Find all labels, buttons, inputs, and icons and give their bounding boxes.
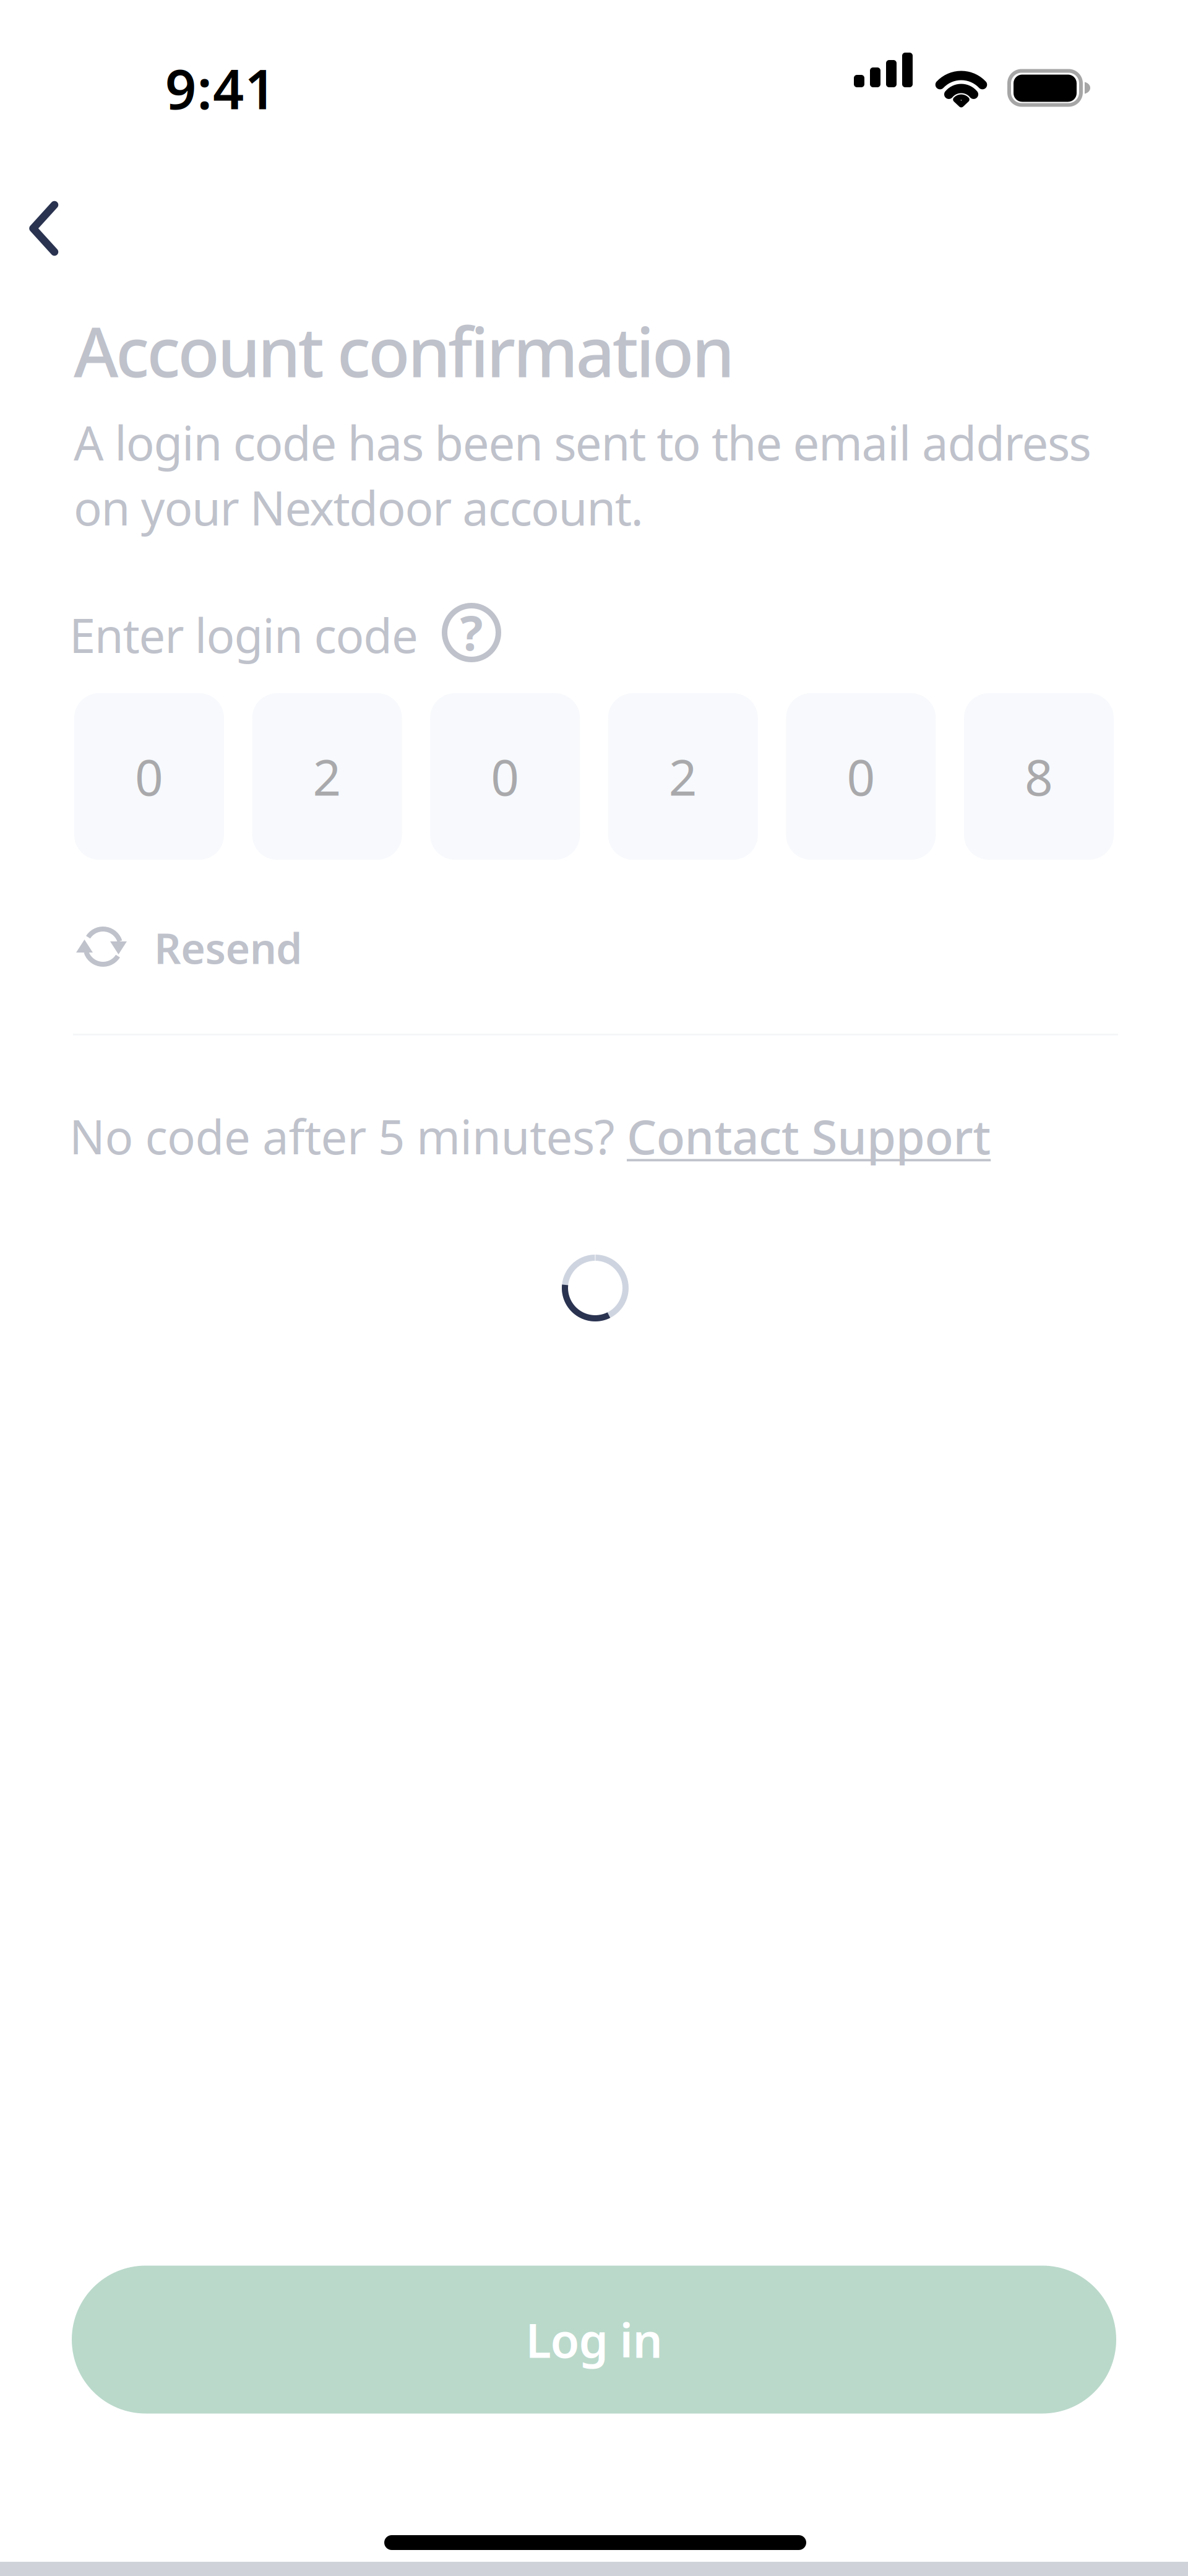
button[interactable]: Login code help [431, 592, 512, 673]
staticText: 9:41 [165, 52, 276, 102]
staticText: Log in [526, 2308, 662, 2371]
staticText: No code after 5 minutes? [69, 1105, 627, 1167]
staticText: 8 [1025, 744, 1053, 809]
button[interactable]: Resend [74, 915, 340, 980]
button[interactable]: Back [4, 172, 99, 284]
staticText: Resend [154, 920, 303, 976]
staticText: 0 [135, 744, 163, 809]
staticText: Contact Support [627, 1105, 991, 1167]
button[interactable]: 8 [964, 693, 1114, 860]
staticText: 2 [313, 744, 341, 809]
staticText: 0 [491, 744, 519, 809]
button[interactable]: Log in [72, 2266, 1116, 2414]
button[interactable]: 0 [786, 693, 936, 860]
button[interactable]: 0 [74, 693, 224, 860]
staticText: ? [460, 600, 483, 664]
button[interactable]: 0 [430, 693, 580, 860]
button[interactable]: Contact Support [627, 1105, 991, 1167]
staticText: 0 [847, 744, 875, 809]
staticText: 2 [669, 744, 697, 809]
button[interactable]: 2 [608, 693, 758, 860]
staticText: A login code has been sent to the email … [74, 411, 1091, 538]
staticText: Enter login code [69, 603, 418, 659]
staticText: Account confirmation [74, 305, 734, 386]
button[interactable]: 2 [252, 693, 402, 860]
